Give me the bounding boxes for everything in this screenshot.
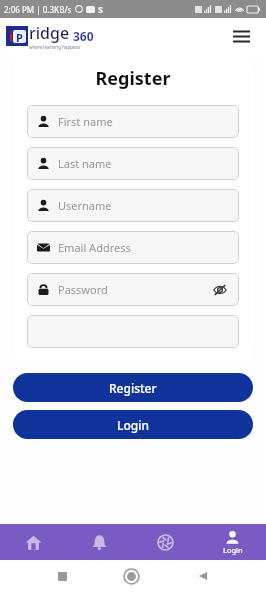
staticText: First name xyxy=(58,114,113,129)
button[interactable]: Notifications xyxy=(66,524,132,560)
button[interactable]: First name xyxy=(27,105,239,138)
staticText: where learning happens xyxy=(29,44,81,50)
staticText: Login xyxy=(223,545,243,555)
staticText: P xyxy=(16,30,23,43)
staticText: Password xyxy=(58,282,108,297)
staticText: Email Address xyxy=(58,240,131,255)
staticText: 2:06 PM | 0.3KB/s xyxy=(4,4,72,15)
staticText: Register xyxy=(27,66,239,91)
button[interactable]: Home xyxy=(124,569,139,584)
staticText: 360 xyxy=(73,28,94,44)
button[interactable]: Home xyxy=(0,524,66,560)
button[interactable]: Last name xyxy=(27,147,239,180)
button[interactable]: Login xyxy=(199,524,266,560)
button[interactable]: Password xyxy=(27,273,239,306)
button[interactable]: Show password xyxy=(211,281,229,299)
button[interactable]: Back xyxy=(197,570,209,582)
button[interactable]: Menu xyxy=(226,21,256,51)
staticText: Register xyxy=(109,380,157,396)
button[interactable]: Username xyxy=(27,189,239,222)
button[interactable]: Settings xyxy=(132,524,199,560)
staticText: Login xyxy=(117,417,149,433)
staticText: Username xyxy=(58,198,112,213)
staticText: ridge xyxy=(29,22,70,44)
staticText: S xyxy=(98,3,103,15)
staticText: i xyxy=(9,27,13,45)
button[interactable] xyxy=(27,315,239,348)
button[interactable]: Register xyxy=(13,373,253,402)
button[interactable]: Email Address xyxy=(27,231,239,264)
staticText: Last name xyxy=(58,156,112,171)
button[interactable]: Login xyxy=(13,410,253,439)
